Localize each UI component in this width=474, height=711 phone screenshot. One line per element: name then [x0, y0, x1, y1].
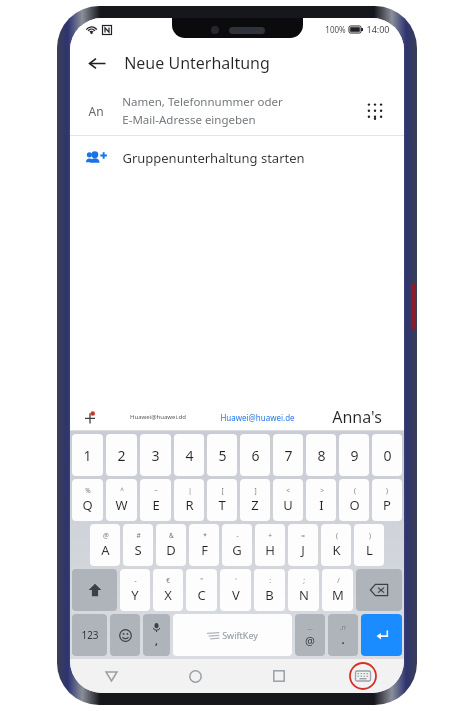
button[interactable]: Voice input: [143, 614, 170, 656]
button[interactable]: An: [70, 86, 404, 136]
staticText: (: [336, 531, 338, 540]
button[interactable]: ^: [106, 479, 137, 521]
button[interactable]: %: [72, 479, 103, 521]
staticText: G: [232, 541, 242, 559]
staticText: Neue Unterhaltung: [124, 52, 270, 74]
button[interactable]: ): [372, 479, 402, 521]
staticText: ~: [154, 486, 158, 495]
staticText: D: [166, 541, 176, 559]
staticText: F: [201, 541, 208, 559]
button[interactable]: Emoji: [110, 614, 140, 656]
button[interactable]: ...: [295, 614, 325, 656]
staticText: Q: [82, 496, 93, 514]
button[interactable]: Huawei@huawei.de: [205, 403, 309, 431]
button[interactable]: ,!?: [328, 614, 358, 656]
staticText: 14:00: [366, 23, 390, 35]
button[interactable]: Gruppenunterhaltung starten: [70, 136, 404, 180]
button[interactable]: 0: [372, 434, 402, 476]
staticText: |: [188, 486, 192, 495]
button[interactable]: Back: [80, 46, 114, 80]
button[interactable]: =: [288, 524, 318, 566]
button[interactable]: *: [189, 524, 219, 566]
button[interactable]: ': [220, 569, 251, 611]
staticText: B: [265, 586, 274, 604]
button[interactable]: -: [222, 524, 252, 566]
button[interactable]: [: [207, 479, 237, 521]
button[interactable]: More options: [70, 403, 110, 431]
staticText: (: [354, 486, 356, 495]
staticText: -: [236, 531, 239, 540]
button[interactable]: +: [255, 524, 285, 566]
staticText: [: [221, 486, 224, 495]
button[interactable]: Dialpad: [360, 96, 390, 126]
staticText: E-Mail-Adresse eingeben: [122, 112, 256, 128]
staticText: 0: [383, 446, 392, 465]
button[interactable]: #: [123, 524, 153, 566]
button[interactable]: 1: [72, 434, 103, 476]
button[interactable]: 3: [140, 434, 171, 476]
button[interactable]: Huawei@huawei.dd: [110, 403, 205, 431]
staticText: 1: [83, 446, 92, 465]
button[interactable]: SwiftKey: [173, 614, 292, 656]
button[interactable]: Home: [180, 661, 210, 691]
button[interactable]: Backspace: [356, 569, 402, 611]
button[interactable]: 123: [72, 614, 107, 656]
staticText: Huawei@huawei.dd: [130, 413, 186, 421]
staticText: 100%: [325, 24, 346, 35]
button[interactable]: (: [339, 479, 369, 521]
staticText: ): [386, 486, 388, 495]
staticText: @: [103, 531, 109, 540]
staticText: Huawei@huawei.de: [220, 412, 295, 423]
staticText: -: [134, 576, 137, 585]
button[interactable]: :: [254, 569, 285, 611]
staticText: R: [185, 496, 194, 514]
button[interactable]: |: [174, 479, 204, 521]
staticText: >: [320, 486, 324, 495]
button[interactable]: €: [153, 569, 183, 611]
staticText: <: [286, 486, 290, 495]
button[interactable]: 2: [106, 434, 137, 476]
staticText: J: [301, 541, 305, 559]
button[interactable]: 6: [240, 434, 270, 476]
button[interactable]: Shift: [72, 569, 117, 611]
staticText: ]: [254, 486, 257, 495]
button[interactable]: @: [90, 524, 120, 566]
staticText: ): [369, 531, 371, 540]
staticText: €: [166, 576, 170, 585]
staticText: *: [203, 531, 207, 540]
button[interactable]: Hide keyboard: [348, 661, 378, 691]
button[interactable]: /: [322, 569, 353, 611]
staticText: 6: [251, 446, 260, 465]
button[interactable]: 4: [174, 434, 204, 476]
button[interactable]: 5: [207, 434, 237, 476]
staticText: 3: [151, 446, 160, 465]
button[interactable]: ~: [140, 479, 171, 521]
button[interactable]: ;: [288, 569, 319, 611]
button[interactable]: 7: [273, 434, 303, 476]
staticText: H: [265, 541, 275, 559]
button[interactable]: ": [186, 569, 217, 611]
staticText: M: [332, 586, 344, 604]
button[interactable]: -: [120, 569, 150, 611]
staticText: S: [134, 541, 142, 559]
staticText: U: [283, 496, 293, 514]
staticText: ;: [303, 576, 305, 585]
button[interactable]: 8: [306, 434, 336, 476]
staticText: Z: [251, 496, 259, 514]
button[interactable]: (: [321, 524, 351, 566]
button[interactable]: 9: [339, 434, 369, 476]
staticText: T: [218, 496, 226, 514]
button[interactable]: ): [354, 524, 384, 566]
staticText: X: [164, 586, 172, 604]
button[interactable]: >: [306, 479, 336, 521]
button[interactable]: Anna's: [309, 403, 404, 431]
button[interactable]: Back: [96, 661, 126, 691]
button[interactable]: Recents: [264, 661, 294, 691]
staticText: ...: [307, 623, 313, 633]
button[interactable]: ]: [240, 479, 270, 521]
button[interactable]: &: [156, 524, 186, 566]
staticText: &: [169, 531, 174, 540]
staticText: L: [366, 541, 373, 559]
button[interactable]: <: [273, 479, 303, 521]
button[interactable]: Enter: [361, 614, 402, 656]
